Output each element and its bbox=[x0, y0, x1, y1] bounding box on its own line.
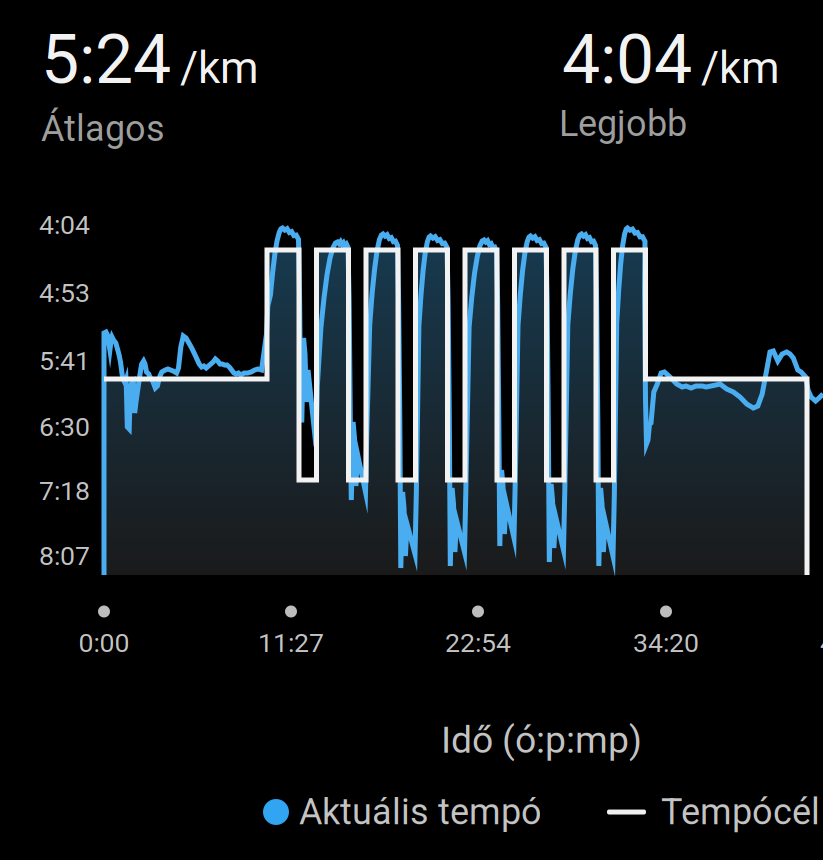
staticText: 11:27 bbox=[258, 627, 324, 659]
staticText: /km bbox=[180, 42, 259, 94]
button[interactable]: 4:04 bbox=[562, 20, 792, 152]
staticText: 22:54 bbox=[445, 627, 511, 659]
staticText: 4:04 bbox=[562, 20, 692, 100]
staticText: 45:47 bbox=[820, 627, 823, 659]
staticText: 4:04 bbox=[39, 209, 90, 241]
button[interactable]: Tempócél bbox=[607, 788, 823, 836]
staticText: 8:07 bbox=[39, 540, 90, 572]
staticText: Legjobb bbox=[559, 103, 687, 145]
staticText: 7:18 bbox=[39, 475, 90, 507]
staticText: 4:53 bbox=[39, 277, 90, 309]
staticText: /km bbox=[701, 42, 780, 94]
staticText: Átlagos bbox=[41, 108, 165, 150]
button[interactable]: Aktuális tempó bbox=[263, 788, 545, 836]
staticText: 6:30 bbox=[39, 411, 90, 443]
staticText: 5:41 bbox=[39, 345, 90, 377]
staticText: 5:24 bbox=[41, 20, 171, 100]
staticText: Aktuális tempó bbox=[299, 791, 542, 833]
staticText: 34:20 bbox=[633, 627, 699, 659]
staticText: Idő (ó:p:mp) bbox=[441, 718, 642, 762]
button[interactable]: 5:24 bbox=[41, 20, 321, 152]
staticText: 0:00 bbox=[78, 627, 129, 659]
staticText: Tempócél bbox=[661, 791, 820, 833]
